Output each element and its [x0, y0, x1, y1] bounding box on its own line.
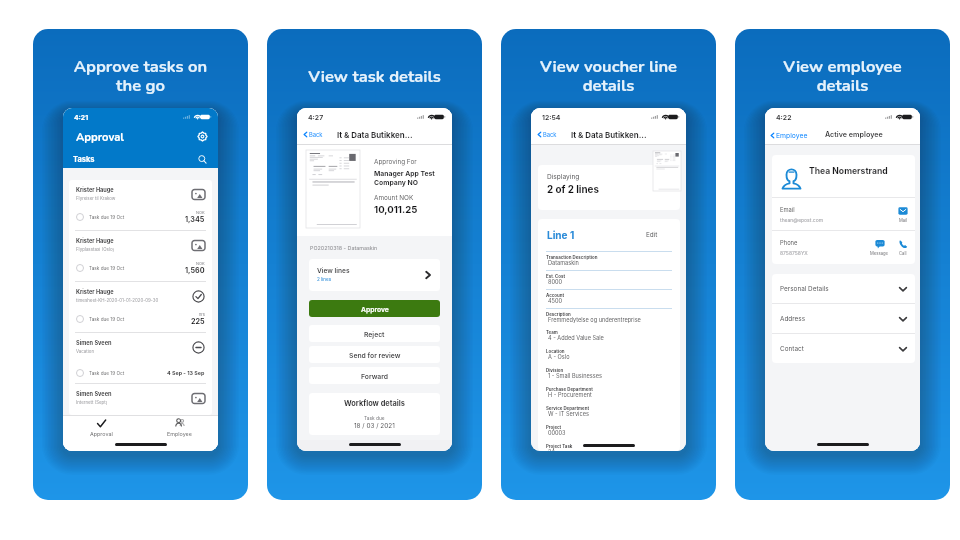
button[interactable]: Reject — [309, 325, 440, 342]
button[interactable]: Krister Hauge — [69, 231, 212, 281]
staticText: Amount NOK — [374, 194, 414, 202]
button[interactable]: Contact — [772, 334, 915, 363]
button[interactable]: Message — [870, 239, 889, 256]
staticText: Active employee — [825, 130, 883, 139]
staticText: Line 1 — [547, 229, 575, 241]
staticText: 2 lines — [317, 277, 332, 283]
staticText: Approve tasks on the go — [41, 55, 240, 97]
staticText: Task due 19 Oct — [89, 370, 125, 376]
staticText: Call — [899, 251, 907, 256]
button[interactable]: Employee — [769, 131, 808, 139]
button[interactable]: View lines — [309, 259, 440, 291]
staticText: 4:22 — [776, 113, 792, 121]
button[interactable]: Approval — [63, 416, 140, 440]
staticText: Division — [546, 368, 564, 373]
button[interactable]: Settings — [194, 130, 210, 146]
staticText: Manager App Test Company NO — [374, 169, 435, 186]
staticText: Task due 19 Oct — [89, 265, 125, 271]
button[interactable]: Call — [898, 239, 908, 256]
staticText: Address — [780, 315, 806, 323]
staticText: Approval — [76, 130, 124, 145]
staticText: Employee — [167, 431, 192, 438]
staticText: 4:27 — [308, 113, 324, 121]
staticText: Project — [546, 425, 562, 430]
button[interactable]: Send for review — [309, 346, 440, 363]
button[interactable]: Forward — [309, 367, 440, 384]
button[interactable]: Address — [772, 304, 915, 333]
button[interactable]: Personal Details — [772, 274, 915, 303]
staticText: Simen Sveen — [76, 391, 112, 398]
staticText: Personal Details — [780, 285, 829, 293]
staticText: Flyplasstaxi (Oslo) — [76, 247, 115, 252]
button[interactable]: Edit — [631, 225, 673, 245]
staticText: 4:21 — [74, 113, 89, 121]
button[interactable]: Approve — [309, 300, 440, 317]
staticText: 00003 — [548, 430, 566, 437]
staticText: Krister Hauge — [76, 187, 114, 194]
staticText: Mail — [899, 218, 908, 223]
staticText: 1,560 — [185, 266, 205, 275]
staticText: H - Procurement — [548, 392, 592, 399]
staticText: Email — [780, 206, 795, 213]
staticText: Internett (Sept) — [76, 400, 108, 405]
staticText: Purchase Department — [546, 387, 593, 392]
staticText: Team — [546, 330, 558, 335]
staticText: Back — [309, 131, 323, 138]
staticText: Reject — [364, 330, 385, 338]
staticText: 8000 — [548, 279, 563, 286]
staticText: 225 — [191, 317, 205, 326]
staticText: Approving For — [374, 158, 417, 166]
staticText: NOK — [196, 261, 205, 266]
staticText: View employee details — [743, 55, 942, 97]
staticText: Simen Sveen — [76, 340, 112, 347]
button[interactable]: Krister Hauge — [69, 180, 212, 230]
staticText: Task due 19 Oct — [89, 316, 125, 322]
staticText: thean@epost.com — [780, 217, 824, 223]
button[interactable]: Simen Sveen — [69, 384, 212, 415]
button[interactable]: Search — [195, 152, 209, 166]
staticText: It & Data Butikken... — [337, 130, 413, 140]
staticText: 4 - Added Value Sale — [548, 335, 604, 342]
staticText: 4500 — [548, 298, 563, 305]
staticText: 8758758YX — [780, 250, 808, 256]
staticText: 10,011.25 — [374, 204, 418, 216]
staticText: Message — [870, 251, 889, 256]
staticText: A - Oslo — [548, 354, 570, 361]
staticText: Back — [543, 131, 557, 138]
staticText: Flyreiser til Krakow — [76, 196, 116, 201]
staticText: Edit — [646, 231, 658, 239]
staticText: 1 - Small Businesses — [548, 373, 602, 380]
staticText: 12:54 — [542, 113, 561, 121]
staticText: Account — [546, 293, 565, 298]
staticText: Datamaskin — [548, 260, 579, 267]
staticText: W - IT Services — [548, 411, 589, 418]
staticText: 2 of 2 lines — [547, 184, 599, 196]
staticText: timesheet-KH-2020-01-01-2020-09-30 — [76, 298, 159, 303]
staticText: Forward — [361, 372, 389, 380]
staticText: Thea Nomerstrand — [809, 166, 888, 176]
staticText: Approve — [361, 305, 389, 313]
button[interactable]: Mail — [898, 206, 908, 223]
staticText: NOK — [196, 210, 205, 215]
staticText: Workflow details — [344, 399, 405, 408]
staticText: Project Task — [546, 444, 573, 449]
staticText: Fremmedytelse og underentreprise — [548, 317, 641, 324]
staticText: Vacation — [76, 349, 95, 354]
button[interactable]: Employee — [140, 416, 218, 440]
staticText: 4 Sep - 13 Sep — [167, 370, 205, 377]
staticText: Location — [546, 349, 565, 354]
button[interactable]: Back — [536, 131, 557, 138]
staticText: 18 / 03 / 2021 — [354, 422, 395, 430]
staticText: Transaction Description — [546, 255, 598, 260]
staticText: Est. Cost — [546, 274, 566, 279]
staticText: Send for review — [349, 351, 401, 359]
staticText: Displaying — [547, 173, 580, 181]
button[interactable]: Krister Hauge — [69, 282, 212, 332]
button[interactable]: Simen Sveen — [69, 333, 212, 383]
staticText: PO20210318 - Datamaskin — [310, 245, 378, 252]
button[interactable]: Back — [302, 131, 323, 138]
staticText: Krister Hauge — [76, 289, 114, 296]
staticText: hrs — [199, 312, 205, 317]
staticText: Contact — [780, 345, 804, 353]
staticText: 1,345 — [185, 215, 205, 224]
